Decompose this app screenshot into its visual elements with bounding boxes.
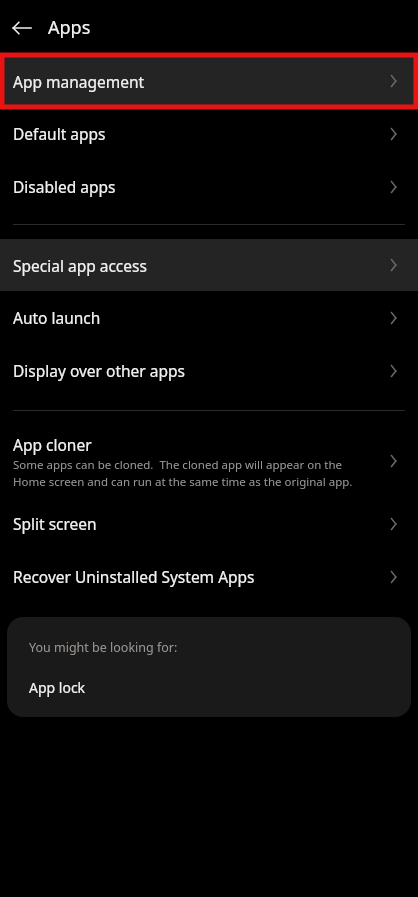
button[interactable]: App cloner — [0, 425, 418, 497]
button[interactable]: Default apps — [0, 107, 418, 160]
staticText: Default apps — [13, 123, 106, 144]
button[interactable]: Display over other apps — [0, 344, 418, 397]
staticText: App management — [13, 71, 145, 92]
staticText: You might be looking for: — [29, 639, 178, 656]
staticText: Display over other apps — [13, 360, 185, 381]
staticText: Apps — [48, 15, 91, 40]
staticText: Some apps can be cloned. The cloned app … — [13, 457, 376, 489]
button[interactable]: Back — [10, 16, 34, 40]
staticText: Recover Uninstalled System Apps — [13, 566, 255, 587]
button[interactable]: App lock — [29, 678, 86, 697]
staticText: Auto launch — [13, 307, 101, 328]
button[interactable]: Special app access — [0, 239, 418, 291]
button[interactable]: Auto launch — [0, 291, 418, 344]
staticText: App cloner — [13, 434, 92, 455]
staticText: Split screen — [13, 513, 97, 534]
button[interactable]: Split screen — [0, 497, 418, 550]
button[interactable]: App management — [2, 55, 416, 107]
button[interactable]: Disabled apps — [0, 160, 418, 213]
staticText: App lock — [29, 678, 86, 697]
staticText: Disabled apps — [13, 176, 116, 197]
staticText: Special app access — [13, 255, 147, 276]
button[interactable]: Recover Uninstalled System Apps — [0, 550, 418, 603]
